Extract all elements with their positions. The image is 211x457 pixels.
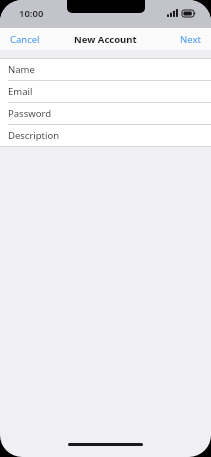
other: Battery [182, 10, 196, 17]
staticText: New Account [74, 33, 137, 46]
button[interactable]: Password [0, 103, 211, 124]
button[interactable]: Cancel [0, 29, 50, 50]
other: Cellular signal strength [167, 9, 179, 17]
staticText: Email [8, 85, 33, 98]
button[interactable]: Description [0, 125, 211, 146]
staticText: 10:00 [19, 7, 44, 20]
button[interactable]: Next [170, 29, 211, 50]
staticText: Next [180, 33, 201, 46]
staticText: Description [8, 129, 60, 142]
staticText: Password [8, 107, 51, 120]
staticText: Cancel [10, 33, 40, 46]
staticText: Name [8, 63, 35, 76]
button[interactable]: Email [0, 81, 211, 102]
button[interactable]: Name [0, 59, 211, 80]
